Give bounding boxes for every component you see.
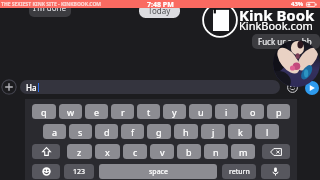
button[interactable]: h <box>174 124 198 139</box>
staticText: z <box>77 146 82 158</box>
staticText: p <box>276 106 282 118</box>
staticText: 123 <box>73 167 86 177</box>
button[interactable]: back <box>262 144 290 159</box>
button[interactable]: return <box>222 164 256 179</box>
button[interactable]: Send <box>305 81 319 95</box>
button[interactable]: a <box>43 124 66 139</box>
staticText: THE SEXIEST KINK SITE - KINKBOOK.COM <box>1 1 102 8</box>
staticText: f <box>131 126 135 138</box>
staticText: c <box>133 146 138 158</box>
button[interactable]: r <box>111 104 134 119</box>
button[interactable]: k <box>228 124 252 139</box>
staticText: Kink Book <box>239 5 315 25</box>
staticText: t <box>147 106 151 118</box>
button[interactable]: emoji <box>32 164 60 179</box>
staticText: 43% <box>291 0 304 8</box>
staticText: o <box>250 106 256 118</box>
staticText: I'm done <box>33 2 67 13</box>
staticText: h <box>183 126 189 138</box>
button[interactable]: b <box>177 144 201 159</box>
staticText: i <box>225 106 228 118</box>
button[interactable]: 123 <box>64 164 94 179</box>
button[interactable]: mic <box>261 164 290 179</box>
button[interactable]: x <box>95 144 120 159</box>
staticText: n <box>213 146 219 158</box>
button[interactable]: m <box>231 144 255 159</box>
staticText: w <box>67 106 75 118</box>
staticText: l <box>266 126 269 138</box>
staticText: g <box>156 126 162 138</box>
staticText: return <box>229 167 250 177</box>
staticText: e <box>94 106 100 118</box>
button[interactable]: l <box>255 124 279 139</box>
button[interactable]: Add attachment <box>1 79 17 95</box>
button[interactable]: s <box>69 124 92 139</box>
staticText: Fuck ur ass bb <box>258 36 312 47</box>
staticText: q <box>41 106 47 118</box>
button[interactable]: g <box>147 124 171 139</box>
button[interactable]: Ha <box>20 80 280 94</box>
staticText: m <box>239 146 248 158</box>
staticText: a <box>52 126 58 138</box>
button[interactable]: q <box>32 104 56 119</box>
button[interactable]: p <box>267 104 290 119</box>
staticText: Ha <box>26 82 37 93</box>
button[interactable]: z <box>67 144 92 159</box>
staticText: space <box>149 167 168 177</box>
staticText: k <box>238 126 243 138</box>
button[interactable]: v <box>150 144 174 159</box>
staticText: u <box>198 106 204 118</box>
staticText: s <box>78 126 83 138</box>
button[interactable]: i <box>215 104 238 119</box>
staticText: r <box>121 106 125 118</box>
button[interactable]: Emoji <box>287 82 298 93</box>
button[interactable]: w <box>59 104 82 119</box>
button[interactable]: t <box>137 104 160 119</box>
staticText: d <box>104 126 110 138</box>
button[interactable]: j <box>201 124 225 139</box>
button[interactable]: space <box>99 164 217 179</box>
staticText: y <box>172 106 177 118</box>
button[interactable]: e <box>85 104 108 119</box>
button[interactable]: d <box>95 124 118 139</box>
button[interactable]: y <box>163 104 186 119</box>
button[interactable]: f <box>121 124 144 139</box>
button[interactable]: o <box>241 104 264 119</box>
button[interactable]: shift <box>32 144 60 159</box>
staticText: Today <box>148 5 171 16</box>
button[interactable]: n <box>204 144 228 159</box>
staticText: KinkBook.com <box>239 18 313 33</box>
staticText: v <box>160 146 165 158</box>
staticText: x <box>105 146 110 158</box>
button[interactable]: u <box>189 104 212 119</box>
staticText: b <box>186 146 192 158</box>
button[interactable]: c <box>123 144 147 159</box>
staticText: j <box>212 126 215 138</box>
staticText: 7:48 PM <box>147 0 174 8</box>
